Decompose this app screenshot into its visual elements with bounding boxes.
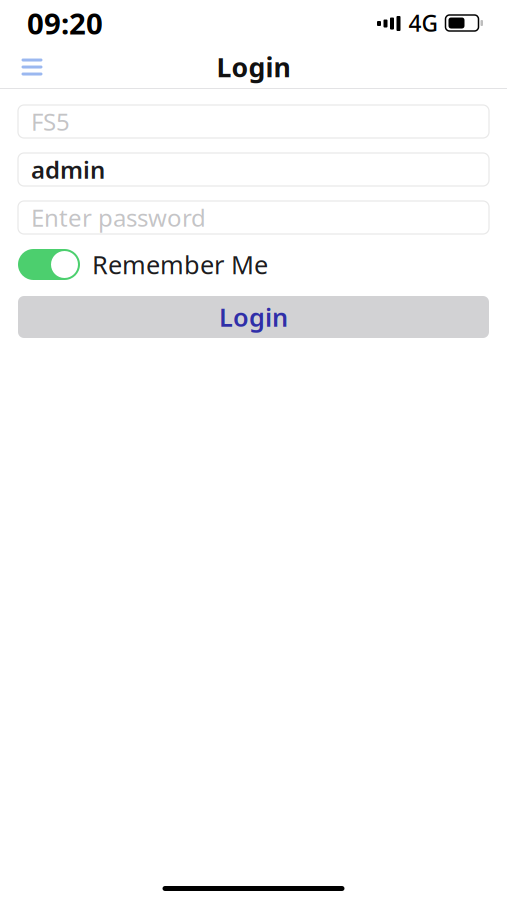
button[interactable]: Login bbox=[18, 296, 489, 338]
staticText: 4G bbox=[408, 8, 437, 38]
staticText: FS5 bbox=[31, 106, 70, 137]
button[interactable]: Menu bbox=[10, 46, 54, 88]
staticText: admin bbox=[31, 154, 105, 185]
staticText: 09:20 bbox=[27, 3, 103, 42]
staticText: Remember Me bbox=[92, 248, 268, 281]
staticText: Enter password bbox=[31, 202, 206, 233]
staticText: Login bbox=[219, 300, 288, 334]
button[interactable]: Remember Me toggle bbox=[18, 249, 80, 280]
staticText: Login bbox=[216, 49, 290, 85]
